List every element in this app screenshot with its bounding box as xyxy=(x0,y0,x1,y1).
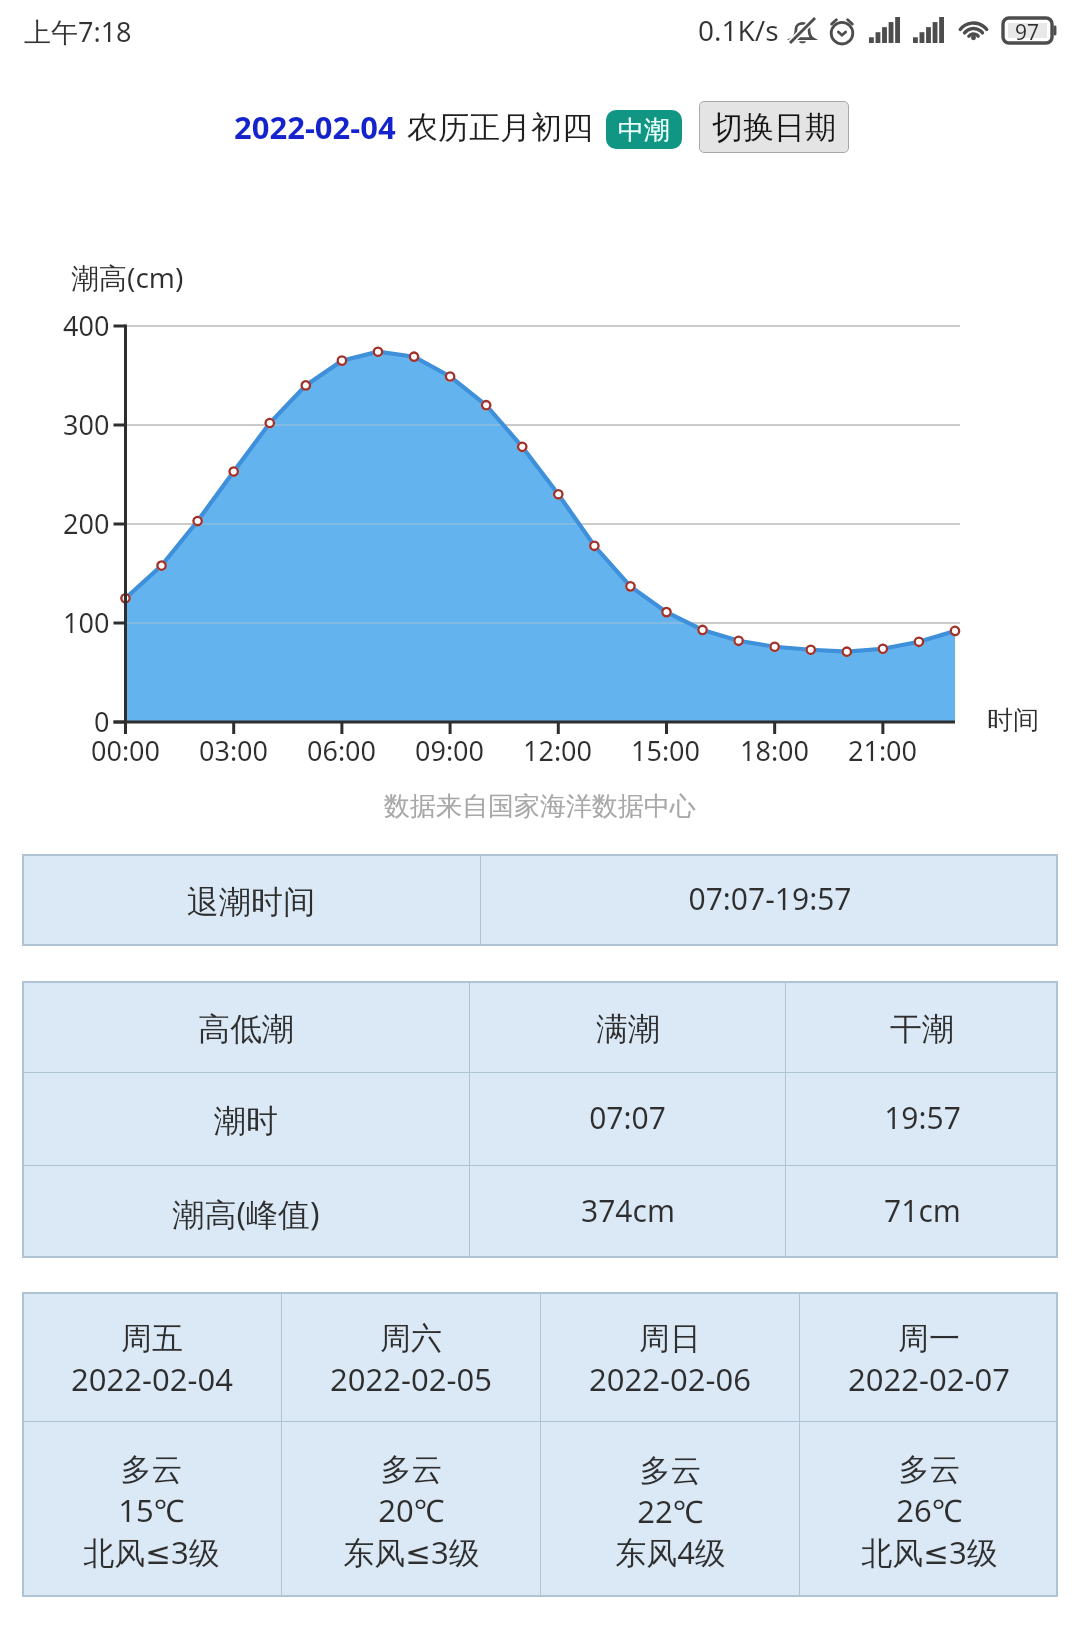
button[interactable]: 干潮 xyxy=(786,981,1058,1072)
staticText: 时间 xyxy=(987,704,1039,737)
staticText: 数据来自国家海洋数据中心 xyxy=(384,790,696,823)
button[interactable]: 退潮时间 xyxy=(22,854,480,946)
button[interactable]: 07:07 xyxy=(470,1073,785,1165)
button[interactable]: 周五 2022-02-04 xyxy=(22,1292,281,1421)
staticText: 0 xyxy=(94,703,110,740)
staticText: 200 xyxy=(63,505,110,542)
staticText: 15:00 xyxy=(631,732,701,769)
staticText: 多云 20℃ 东风≤3级 xyxy=(343,1450,480,1573)
staticText: 多云 15℃ 北风≤3级 xyxy=(83,1450,220,1573)
staticText: 周日 2022-02-06 xyxy=(589,1319,751,1400)
button[interactable]: 中潮 xyxy=(606,110,682,149)
other: Wi-Fi connected xyxy=(957,17,990,43)
button[interactable]: 多云 26℃ 北风≤3级 xyxy=(800,1422,1058,1597)
staticText: 300 xyxy=(63,406,110,443)
staticText: 满潮 xyxy=(596,1009,660,1049)
button[interactable]: 374cm xyxy=(470,1166,785,1258)
button[interactable]: 多云 22℃ 东风4级 xyxy=(541,1422,799,1597)
staticText: 高低潮 xyxy=(198,1009,294,1049)
button[interactable]: 多云 15℃ 北风≤3级 xyxy=(22,1422,281,1597)
button[interactable]: 满潮 xyxy=(470,981,785,1072)
button[interactable]: 切换日期 xyxy=(699,101,849,153)
staticText: 21:00 xyxy=(848,732,918,769)
staticText: 07:07-19:57 xyxy=(688,878,852,919)
button[interactable]: 多云 20℃ 东风≤3级 xyxy=(282,1422,540,1597)
staticText: 100 xyxy=(63,604,110,641)
button[interactable]: 07:07-19:57 xyxy=(481,854,1058,946)
staticText: 0.1K/s xyxy=(698,11,779,49)
button[interactable]: 潮时 xyxy=(22,1073,469,1165)
staticText: 农历正月初四 xyxy=(407,108,593,147)
staticText: 退潮时间 xyxy=(187,882,315,922)
staticText: 03:00 xyxy=(199,732,269,769)
button[interactable]: 潮高(峰值) xyxy=(22,1166,469,1258)
button[interactable]: 71cm xyxy=(786,1166,1058,1258)
staticText: 上午7:18 xyxy=(24,13,132,50)
other: Mobile signal xyxy=(913,17,944,43)
staticText: 中潮 xyxy=(618,114,670,147)
staticText: 2022-02-04 xyxy=(234,106,396,148)
staticText: 374cm xyxy=(581,1190,675,1231)
staticText: 潮高(cm) xyxy=(71,258,184,296)
staticText: 切换日期 xyxy=(712,108,836,147)
button[interactable]: 19:57 xyxy=(786,1073,1058,1165)
staticText: 周五 2022-02-04 xyxy=(71,1319,233,1400)
staticText: 12:00 xyxy=(523,732,593,769)
staticText: 09:00 xyxy=(415,732,485,769)
staticText: 400 xyxy=(63,307,110,344)
staticText: 07:07 xyxy=(589,1097,666,1138)
staticText: 干潮 xyxy=(890,1009,954,1049)
staticText: 周一 2022-02-07 xyxy=(848,1319,1010,1400)
staticText: 00:00 xyxy=(91,732,161,769)
staticText: 18:00 xyxy=(740,732,810,769)
other: Ringer muted xyxy=(790,17,815,44)
staticText: 周六 2022-02-05 xyxy=(330,1319,492,1400)
staticText: 多云 22℃ 东风4级 xyxy=(615,1451,726,1573)
button[interactable]: 周六 2022-02-05 xyxy=(282,1292,540,1421)
staticText: 多云 26℃ 北风≤3级 xyxy=(861,1450,998,1573)
button[interactable]: 高低潮 xyxy=(22,981,469,1072)
staticText: 97 xyxy=(1015,18,1040,43)
staticText: 潮高(峰值) xyxy=(172,1192,320,1236)
staticText: 19:57 xyxy=(884,1097,961,1138)
other: Battery 97 percent xyxy=(1003,18,1056,43)
button[interactable]: 周一 2022-02-07 xyxy=(800,1292,1058,1421)
staticText: 71cm xyxy=(884,1190,961,1231)
staticText: 潮时 xyxy=(214,1101,278,1141)
staticText: 06:00 xyxy=(307,732,377,769)
other: Alarm set xyxy=(828,17,856,44)
button[interactable]: 周日 2022-02-06 xyxy=(541,1292,799,1421)
other: Mobile signal xyxy=(869,17,900,43)
